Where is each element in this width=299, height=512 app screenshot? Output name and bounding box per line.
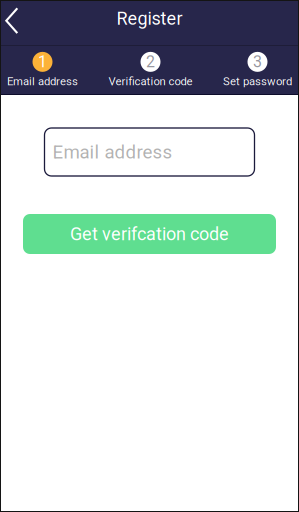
staticText: Verification code [108,75,192,88]
staticText: Email address [52,141,172,163]
staticText: 1 [38,52,47,71]
staticText: Email address [7,75,78,88]
staticText: 3 [253,52,262,71]
button[interactable]: Get verifcation code [23,214,276,254]
staticText: Get verifcation code [70,223,229,245]
staticText: Set password [223,75,292,88]
staticText: Register [116,8,182,29]
button[interactable]: Back [0,0,24,45]
staticText: 2 [146,52,155,71]
